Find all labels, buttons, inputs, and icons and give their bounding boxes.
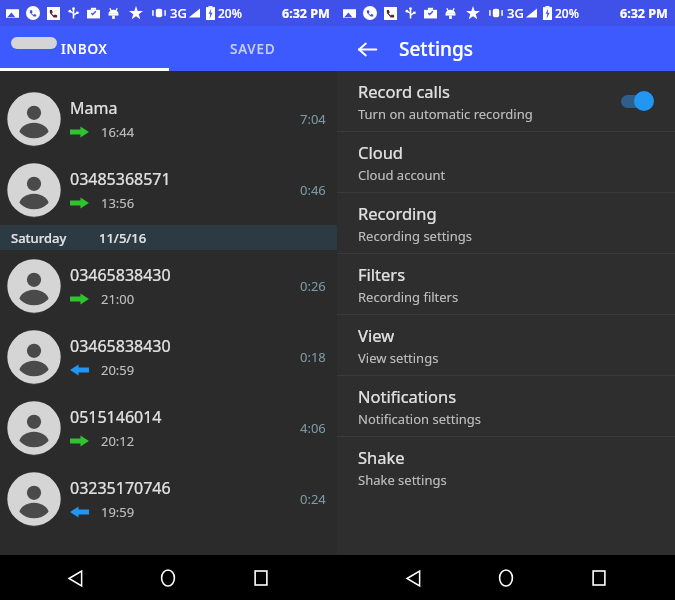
staticText: Record calls: [358, 80, 450, 102]
staticText: SAVED: [230, 40, 276, 58]
button[interactable]: Back: [349, 31, 385, 67]
staticText: 19:59: [101, 503, 135, 521]
staticText: 6:32 PM: [620, 5, 668, 22]
staticText: 03485368571: [70, 168, 171, 190]
staticText: 6:32 PM: [282, 5, 330, 22]
button[interactable]: 03465838430: [0, 250, 337, 321]
staticText: Settings: [399, 36, 473, 62]
button[interactable]: 0515146014: [0, 392, 337, 463]
button[interactable]: Filters: [337, 254, 675, 314]
staticText: 16:44: [101, 123, 135, 141]
button[interactable]: Cloud: [337, 132, 675, 192]
button[interactable]: Back: [55, 558, 95, 598]
button[interactable]: INBOX: [0, 26, 168, 71]
staticText: Turn on automatic recording: [358, 105, 533, 123]
button[interactable]: Recording: [337, 193, 675, 253]
staticText: 0:18: [300, 348, 326, 366]
staticText: 0:46: [300, 181, 326, 199]
staticText: 20%: [218, 5, 242, 21]
staticText: Notifications: [358, 385, 457, 407]
staticText: 3G: [507, 4, 524, 22]
button[interactable]: Recents: [579, 558, 619, 598]
button[interactable]: Recents: [241, 558, 281, 598]
staticText: Saturday: [11, 229, 67, 247]
button[interactable]: 03485368571: [0, 154, 337, 225]
staticText: Recording: [358, 202, 437, 224]
staticText: 3G: [170, 4, 187, 22]
staticText: 4:06: [300, 419, 326, 437]
staticText: Shake settings: [358, 471, 447, 489]
staticText: 20%: [555, 5, 579, 21]
staticText: 21:00: [101, 290, 135, 308]
button[interactable]: Shake: [337, 437, 675, 497]
button[interactable]: SAVED: [168, 26, 337, 71]
staticText: 0:24: [300, 490, 326, 508]
button[interactable]: Home: [148, 558, 188, 598]
staticText: 7:04: [300, 110, 326, 128]
button[interactable]: 03465838430: [0, 321, 337, 392]
button[interactable]: Notifications: [337, 376, 675, 436]
staticText: Recording settings: [358, 227, 472, 245]
staticText: 0515146014: [70, 406, 162, 428]
staticText: View: [358, 324, 395, 346]
button[interactable]: Record calls: [337, 71, 675, 131]
staticText: Filters: [358, 263, 406, 285]
staticText: View settings: [358, 349, 439, 367]
staticText: 03465838430: [70, 335, 171, 357]
staticText: INBOX: [61, 40, 108, 58]
staticText: 11/5/16: [99, 229, 147, 247]
staticText: 13:56: [101, 194, 135, 212]
staticText: Cloud account: [358, 166, 446, 184]
staticText: 03235170746: [70, 477, 171, 499]
button[interactable]: 03235170746: [0, 463, 337, 534]
button[interactable]: Back: [393, 558, 433, 598]
staticText: 20:59: [101, 361, 135, 379]
staticText: Recording filters: [358, 288, 459, 306]
staticText: Cloud: [358, 141, 404, 163]
staticText: Mama: [70, 97, 118, 119]
staticText: 20:12: [101, 432, 135, 450]
staticText: Shake: [358, 446, 405, 468]
button[interactable]: Home: [486, 558, 526, 598]
staticText: 03465838430: [70, 264, 171, 286]
button[interactable]: Mama: [0, 83, 337, 154]
staticText: 0:26: [300, 277, 326, 295]
button[interactable]: Record calls toggle: [617, 90, 657, 112]
button[interactable]: View: [337, 315, 675, 375]
staticText: Notification settings: [358, 410, 482, 428]
